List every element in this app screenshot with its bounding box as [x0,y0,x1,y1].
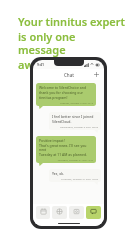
staticText: Yes, ok. [52,171,65,176]
button[interactable]: Yes, ok. [36,169,101,185]
staticText: Chat [64,72,74,78]
staticText: Your tinnitus expert [18,14,125,29]
staticText: Tuesday, October 5 2021 8:12 [39,101,93,104]
staticText: SilentCloud. [52,119,72,124]
staticText: away [18,57,47,72]
button[interactable]: I feel better since I joined [36,112,101,133]
staticText: Positive impact! [39,138,65,143]
staticText: is only one message [18,29,125,57]
button[interactable]: Sounds [69,206,84,219]
staticText: 9:41 [37,62,44,67]
staticText: Tuesday at 11 AM as planned. [39,152,87,157]
button[interactable]: Chat [86,206,101,219]
button[interactable]: Therapy [52,206,67,219]
button[interactable]: Activities [36,206,50,219]
staticText: thank you for choosing our [39,90,83,95]
staticText: Wednesday, October 6 2021 09:20 [52,125,98,128]
button[interactable]: New message [93,71,100,78]
staticText: Welcome to SilentChoice and [39,85,87,90]
staticText: Thursday, October 21 2021 16:04 [52,177,98,180]
staticText: I feel better since I joined [52,114,94,119]
staticText: That's great news. I'll see you next [39,143,93,152]
button[interactable]: Positive impact! [36,136,101,166]
staticText: Thursday, October 21 2021 4:47 [39,158,93,161]
button[interactable]: Welcome to SilentChoice and [36,83,101,109]
staticText: tinnitus program! [39,95,68,100]
